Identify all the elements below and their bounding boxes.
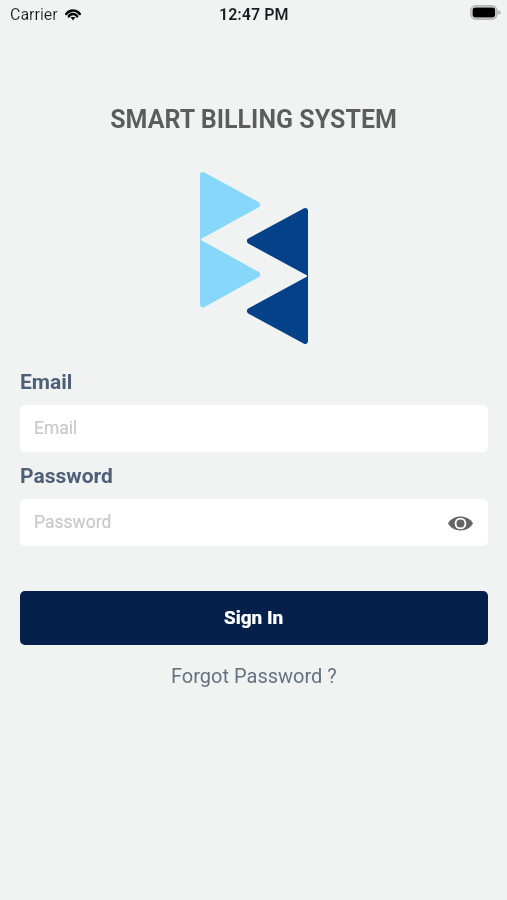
staticText: 12:47 PM xyxy=(219,5,289,24)
staticText: Email xyxy=(34,418,78,439)
button[interactable]: Forgot Password ? xyxy=(161,658,347,693)
staticText: Sign In xyxy=(224,606,284,628)
button[interactable]: Sign In xyxy=(20,591,488,645)
button[interactable]: Email xyxy=(20,405,488,452)
staticText: SMART BILLING SYSTEM xyxy=(0,105,507,134)
button[interactable]: Password xyxy=(20,499,488,546)
staticText: Password xyxy=(34,512,112,533)
staticText: Carrier xyxy=(10,5,58,24)
staticText: Email xyxy=(20,370,73,395)
staticText: Password xyxy=(20,464,113,489)
button[interactable]: Show password xyxy=(445,508,475,538)
staticText: Forgot Password ? xyxy=(171,664,337,687)
